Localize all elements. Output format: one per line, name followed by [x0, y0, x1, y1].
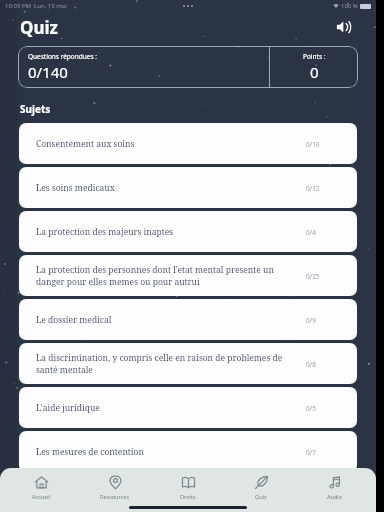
staticText: 0/10	[306, 140, 340, 149]
button[interactable]: L'aide juridique	[19, 387, 357, 428]
button[interactable]: Droits	[156, 474, 220, 501]
staticText: Sujets	[20, 102, 51, 116]
staticText: 0/4	[306, 228, 340, 237]
staticText: Points :	[303, 52, 326, 61]
staticText: Accueil	[32, 493, 51, 500]
staticText: Droits	[180, 493, 196, 500]
staticText: Questions répondues :	[28, 52, 98, 61]
staticText: 10:05 PM Lun. 15 mai	[5, 2, 67, 10]
button[interactable]: Les mesures de contention	[19, 431, 357, 472]
staticText: Quiz	[255, 493, 267, 500]
staticText: La discrimination, y compris celle en ra…	[36, 352, 296, 376]
staticText: Les mesures de contention	[36, 446, 296, 458]
staticText: Ressources	[100, 493, 130, 500]
staticText: Le dossier medical	[36, 314, 296, 326]
staticText: Consentement aux soins	[36, 138, 296, 150]
button[interactable]: Son	[328, 12, 358, 42]
staticText: 0/25	[306, 272, 340, 281]
button[interactable]: Consentement aux soins	[19, 123, 357, 164]
button[interactable]: Audio	[303, 474, 367, 501]
button[interactable]: Quiz	[229, 474, 293, 501]
staticText: Les soins medicaux	[36, 182, 296, 194]
button[interactable]: Ressources	[83, 474, 147, 501]
button[interactable]: Les soins medicaux	[19, 167, 357, 208]
staticText: 0/7	[306, 448, 340, 457]
staticText: 100 %	[341, 2, 358, 10]
staticText: L'aide juridique	[36, 402, 296, 414]
button[interactable]: Le dossier medical	[19, 299, 357, 340]
staticText: La protection des personnes dont l'etat …	[36, 264, 296, 288]
staticText: La protection des majeurs inaptes	[36, 226, 296, 238]
staticText: 0/140	[28, 62, 68, 82]
button[interactable]: Questions répondues :	[18, 46, 358, 88]
button[interactable]: La discrimination, y compris celle en ra…	[19, 343, 357, 384]
staticText: 0/12	[306, 184, 340, 193]
staticText: 0	[310, 62, 319, 82]
staticText: 0/5	[306, 404, 340, 413]
staticText: Quiz	[20, 16, 58, 39]
staticText: Audio	[327, 493, 343, 500]
button[interactable]: La protection des majeurs inaptes	[19, 211, 357, 252]
staticText: 0/8	[306, 360, 340, 369]
button[interactable]: La protection des personnes dont l'etat …	[19, 255, 357, 296]
button[interactable]: Accueil	[9, 474, 73, 501]
staticText: 0/9	[306, 316, 340, 325]
